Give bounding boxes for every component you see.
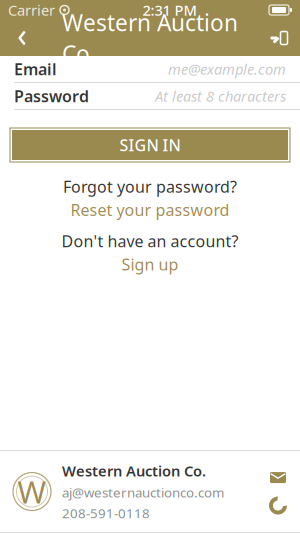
staticText: Sign up: [121, 254, 178, 275]
button[interactable]: Password: [0, 83, 300, 109]
staticText: 2:31 PM: [142, 0, 196, 20]
button[interactable]: Reset your password: [70, 197, 229, 220]
staticText: Reset your password: [70, 199, 229, 220]
staticText: Carrier: [8, 0, 55, 20]
staticText: Password: [14, 85, 89, 107]
staticText: aj@westernauctionco.com: [62, 484, 224, 501]
staticText: 208-591-0118: [62, 504, 150, 522]
staticText: Email: [14, 58, 57, 80]
button[interactable]: SIGN IN: [10, 128, 290, 162]
button[interactable]: Call: [264, 496, 292, 516]
staticText: SIGN IN: [119, 134, 180, 156]
button[interactable]: Back: [0, 20, 44, 56]
staticText: Western Auction Co.: [62, 7, 238, 69]
staticText: At least 8 characters: [155, 86, 286, 106]
staticText: Don't have an account?: [61, 230, 238, 252]
button[interactable]: Sign up: [121, 252, 178, 275]
button[interactable]: Sign in: [256, 20, 300, 56]
staticText: me@example.com: [168, 59, 286, 79]
button[interactable]: Email: [0, 56, 300, 82]
button[interactable]: Email: [264, 468, 292, 488]
staticText: Western Auction Co.: [62, 461, 206, 481]
staticText: Forgot your password?: [63, 176, 237, 197]
staticText: W: [17, 471, 46, 512]
